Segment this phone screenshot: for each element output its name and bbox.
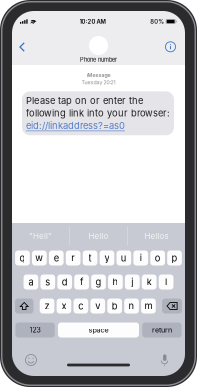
staticText: l [165, 276, 167, 288]
staticText: r [71, 252, 75, 264]
staticText: s [45, 276, 50, 288]
button[interactable]: 123 [15, 322, 55, 337]
button[interactable]: space [58, 322, 139, 337]
button[interactable]: d [57, 274, 72, 289]
staticText: y [104, 252, 109, 264]
button[interactable]: y [100, 250, 114, 265]
button[interactable]: a [23, 274, 38, 289]
staticText: Hellos [144, 231, 168, 241]
button[interactable]: b [107, 298, 122, 313]
staticText: d [62, 276, 68, 288]
button[interactable]: i [133, 250, 148, 265]
button[interactable]: e [49, 250, 64, 265]
button[interactable]: r [66, 250, 80, 265]
staticText: "Hell" [29, 231, 52, 241]
staticText: n [128, 300, 134, 312]
staticText: 123 [30, 326, 41, 334]
staticText: f [80, 276, 83, 288]
button[interactable]: p [167, 250, 182, 265]
button[interactable]: Dictation [156, 351, 173, 369]
button[interactable]: v [90, 298, 105, 313]
staticText: Hello [88, 231, 108, 241]
staticText: v [95, 300, 100, 312]
staticText: e [54, 252, 59, 264]
button[interactable]: l [159, 274, 173, 289]
staticText: x [61, 300, 66, 312]
button[interactable]: x [57, 298, 71, 313]
staticText: h [112, 276, 118, 288]
staticText: following link into your browser: [26, 107, 170, 119]
staticText: t [88, 252, 91, 264]
staticText: Tuesday 20:21 [81, 79, 115, 85]
button[interactable]: return [142, 322, 182, 337]
staticText: Phone number [80, 56, 117, 63]
staticText: p [172, 252, 178, 264]
button[interactable]: Details [156, 34, 185, 58]
button[interactable]: c [73, 298, 88, 313]
button[interactable]: n [124, 298, 139, 313]
button[interactable]: Hello [70, 223, 127, 249]
staticText: z [44, 300, 49, 312]
staticText: q [19, 252, 25, 264]
button[interactable]: h [108, 274, 123, 289]
staticText: i [140, 252, 142, 264]
button[interactable]: t [83, 250, 97, 265]
staticText: eid://linkaddress?=as0 [26, 120, 125, 131]
staticText: a [28, 276, 33, 288]
button[interactable]: q [15, 250, 30, 265]
button[interactable]: Back [12, 34, 34, 58]
button[interactable]: j [125, 274, 140, 289]
staticText: space [88, 326, 108, 334]
staticText: b [112, 300, 118, 312]
button[interactable]: m [141, 298, 156, 313]
button[interactable]: k [142, 274, 157, 289]
button[interactable]: o [150, 250, 165, 265]
button[interactable]: s [40, 274, 55, 289]
staticText: 80% [150, 18, 164, 25]
button[interactable]: Delete [162, 298, 182, 313]
staticText: w [35, 252, 43, 264]
staticText: j [131, 276, 133, 288]
button[interactable]: u [116, 250, 131, 265]
button[interactable]: w [32, 250, 47, 265]
staticText: iMessage [86, 72, 110, 78]
staticText: k [147, 276, 152, 288]
staticText: Please tap on or enter the [26, 95, 143, 106]
staticText: m [144, 300, 152, 312]
button[interactable]: g [91, 274, 106, 289]
staticText: 10:20 AM [80, 18, 106, 25]
staticText: g [95, 276, 101, 288]
button[interactable]: f [74, 274, 89, 289]
staticText: c [78, 300, 83, 312]
button[interactable]: "Hell" [12, 223, 69, 249]
button[interactable]: Emoji keyboard [21, 351, 41, 369]
staticText: o [155, 252, 161, 264]
button[interactable]: z [40, 298, 54, 313]
staticText: return [152, 326, 172, 334]
staticText: u [121, 252, 127, 264]
button[interactable]: Shift [15, 298, 33, 313]
button[interactable]: Hellos [128, 223, 185, 249]
